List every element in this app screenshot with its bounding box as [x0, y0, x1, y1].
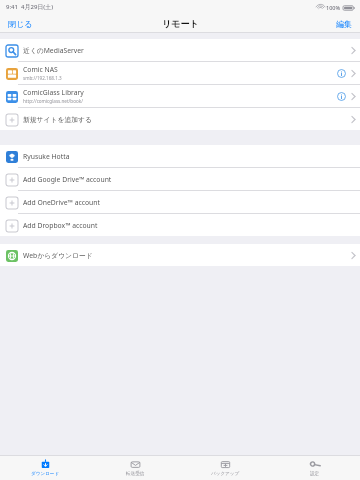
- button[interactable]: バックアップ: [180, 456, 270, 480]
- staticText: 100%: [326, 4, 341, 11]
- staticText: 9:41 4月29日(土): [6, 3, 54, 11]
- button[interactable]: 編集: [328, 16, 360, 32]
- button[interactable]: Info: [335, 67, 348, 80]
- button[interactable]: Add Google Drive™ account: [0, 168, 360, 190]
- staticText: smb://192.168.1.3: [23, 75, 62, 81]
- button[interactable]: Ryusuke Hotta: [0, 145, 360, 167]
- button[interactable]: 新規サイトを追加する: [0, 108, 360, 130]
- button[interactable]: Add Dropbox™ account: [0, 214, 360, 236]
- staticText: ダウンロード: [31, 471, 60, 477]
- staticText: http://comicglass.net/book/: [23, 98, 83, 104]
- button[interactable]: 転送受信: [90, 456, 180, 480]
- staticText: 編集: [336, 19, 352, 29]
- button[interactable]: ComicGlass Library: [0, 85, 360, 107]
- staticText: Ryusuke Hotta: [23, 152, 70, 161]
- staticText: Add Google Drive™ account: [23, 175, 112, 184]
- staticText: 設定: [310, 471, 320, 477]
- button[interactable]: Comic NAS: [0, 62, 360, 84]
- button[interactable]: Webからダウンロード: [0, 244, 360, 266]
- staticText: 閉じる: [8, 19, 33, 29]
- button[interactable]: Add OneDrive™ account: [0, 191, 360, 213]
- button[interactable]: Info: [335, 90, 348, 103]
- button[interactable]: 閉じる: [0, 16, 41, 32]
- staticText: Add Dropbox™ account: [23, 221, 98, 230]
- staticText: 近くのMediaServer: [23, 46, 84, 55]
- staticText: ComicGlass Library: [23, 88, 84, 97]
- staticText: 新規サイトを追加する: [23, 115, 92, 124]
- staticText: Add OneDrive™ account: [23, 198, 100, 207]
- staticText: バックアップ: [211, 471, 240, 477]
- button[interactable]: ダウンロード: [0, 456, 90, 480]
- button[interactable]: 設定: [270, 456, 360, 480]
- staticText: 転送受信: [126, 471, 145, 477]
- staticText: リモート: [162, 18, 199, 29]
- staticText: Webからダウンロード: [23, 251, 93, 260]
- button[interactable]: 近くのMediaServer: [0, 39, 360, 61]
- staticText: Comic NAS: [23, 65, 58, 74]
